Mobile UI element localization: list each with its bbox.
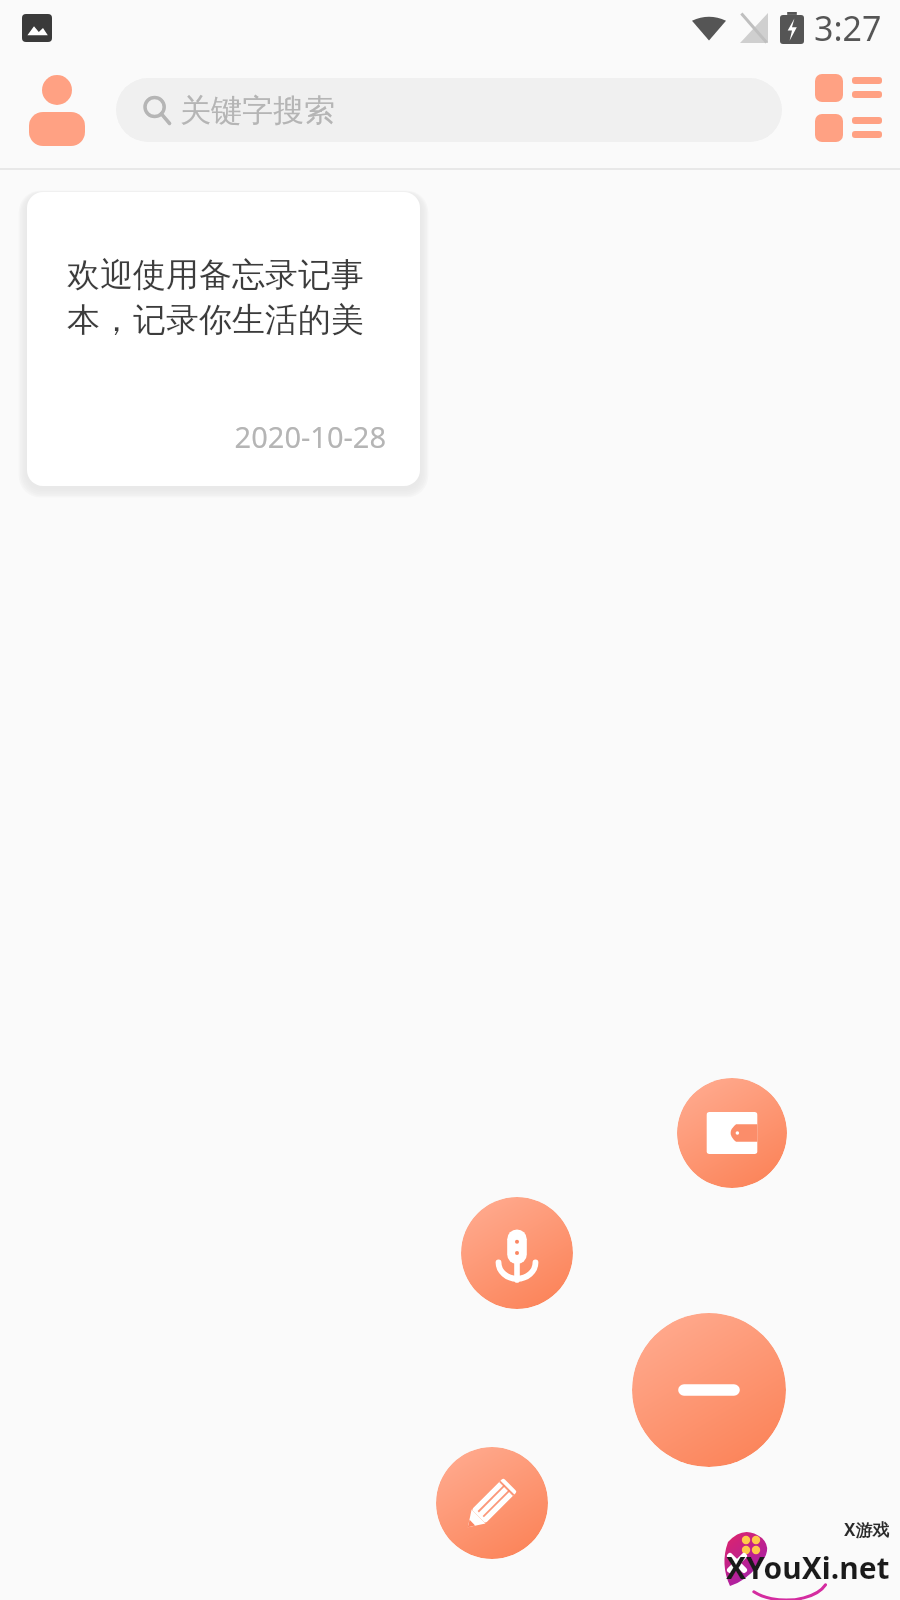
staticText: 2020-10-28 <box>67 417 386 456</box>
button[interactable]: List view <box>806 68 886 148</box>
button[interactable]: Voice note <box>461 1197 573 1309</box>
staticText: 3:27 <box>814 5 882 51</box>
staticText: XYouXi.net <box>726 1547 890 1588</box>
button[interactable]: 关键字搜索 <box>116 78 782 142</box>
button[interactable]: 欢迎使用备忘录记事本，记录你生活的美 <box>27 192 420 486</box>
button[interactable]: Close menu <box>632 1313 786 1467</box>
staticText: 欢迎使用备忘录记事本，记录你生活的美 <box>67 254 386 341</box>
staticText: X游戏 <box>844 1518 890 1541</box>
staticText: 关键字搜索 <box>180 91 335 130</box>
button[interactable]: Profile <box>18 60 96 150</box>
button[interactable]: Wallet <box>677 1078 787 1188</box>
button[interactable]: New note <box>436 1447 548 1559</box>
